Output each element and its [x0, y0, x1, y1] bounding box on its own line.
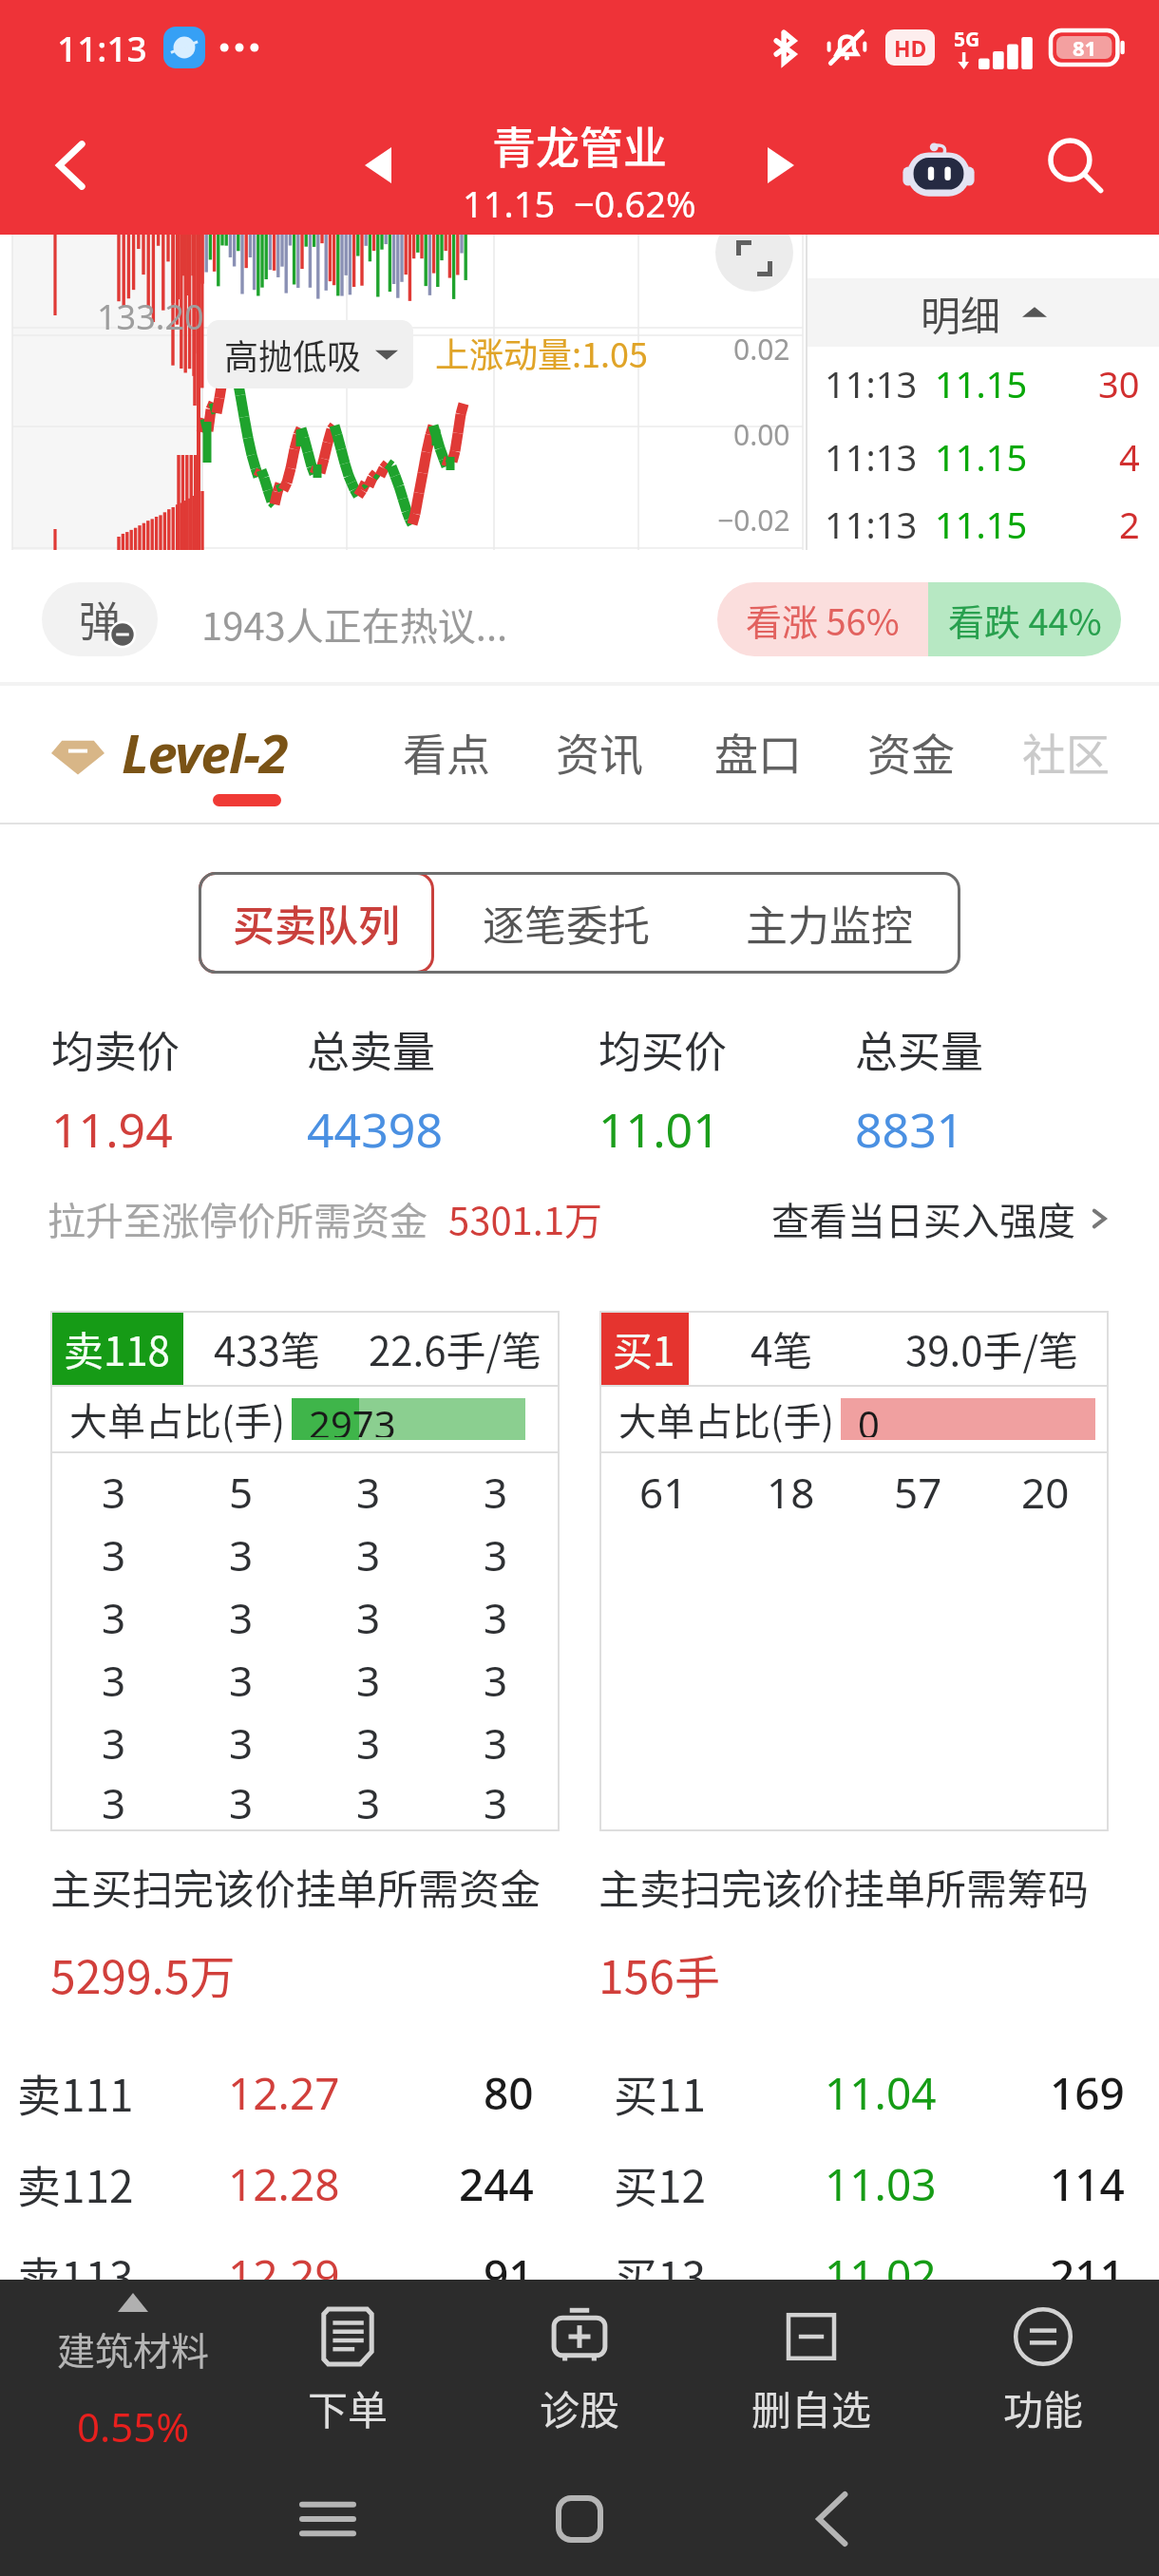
- staticText: −0.02: [717, 501, 790, 540]
- staticText: 20: [1021, 1464, 1070, 1521]
- staticText: HD: [894, 33, 927, 63]
- staticText: 诊股: [540, 2378, 620, 2436]
- staticText: 买11: [614, 2061, 707, 2125]
- staticText: 1943人正在热议...: [201, 597, 508, 652]
- staticText: 5301.1万: [448, 1191, 603, 1246]
- staticText: 44398: [307, 1097, 443, 1162]
- button[interactable]: 下单: [232, 2280, 464, 2462]
- staticText: 22.6手/笔: [369, 1319, 542, 1377]
- staticText: 11.15: [935, 500, 1028, 549]
- staticText: 盘口: [714, 720, 802, 784]
- staticText: 下单: [308, 2378, 389, 2436]
- staticText: 建筑材料: [57, 2321, 209, 2377]
- button[interactable]: Fullscreen chart: [715, 214, 793, 292]
- staticText: 4: [1119, 432, 1140, 482]
- staticText: 3: [102, 1464, 126, 1521]
- staticText: 高抛低吸: [224, 330, 362, 379]
- staticText: 11.02: [825, 2245, 937, 2305]
- staticText: 资讯: [556, 720, 643, 784]
- staticText: 11.04: [825, 2063, 937, 2123]
- staticText: 3: [229, 1774, 254, 1831]
- button[interactable]: 查看当日买入强度: [771, 1191, 1111, 1246]
- staticText: 5299.5万: [50, 1941, 236, 2007]
- button[interactable]: Previous stock: [337, 124, 419, 206]
- staticText: 12.29: [228, 2245, 340, 2305]
- staticText: 5G: [954, 26, 980, 53]
- button[interactable]: Next stock: [740, 124, 822, 206]
- staticText: 均买价: [598, 1018, 728, 1080]
- staticText: 91: [484, 2245, 534, 2305]
- button[interactable]: 盘口: [695, 709, 821, 795]
- button[interactable]: Search: [1032, 122, 1119, 209]
- staticText: 卖113: [17, 2244, 134, 2307]
- staticText: 3: [484, 1774, 508, 1831]
- button[interactable]: 功能: [927, 2280, 1159, 2462]
- button[interactable]: 建筑材料: [17, 2280, 249, 2462]
- button[interactable]: 明细: [807, 278, 1159, 347]
- staticText: 133.20: [97, 294, 204, 340]
- staticText: 2973: [309, 1398, 396, 1437]
- button[interactable]: Recent apps: [252, 2462, 404, 2576]
- staticText: 删自选: [751, 2378, 872, 2436]
- staticText: 244: [459, 2154, 534, 2214]
- button[interactable]: 高抛低吸: [207, 320, 413, 388]
- staticText: 3: [229, 1589, 254, 1646]
- button[interactable]: Home: [503, 2462, 655, 2576]
- staticText: 逐笔委托: [483, 893, 650, 954]
- staticText: 大单占比(手): [618, 1392, 835, 1447]
- staticText: 卖111: [17, 2061, 134, 2125]
- staticText: 拉升至涨停价所需资金: [47, 1191, 427, 1246]
- staticText: 114: [1050, 2154, 1125, 2214]
- button[interactable]: 买1: [599, 1311, 1109, 1831]
- button[interactable]: 卖113: [0, 2229, 1159, 2320]
- button[interactable]: 逐笔委托: [434, 872, 697, 974]
- staticText: 青龙管业: [492, 113, 667, 177]
- staticText: 4笔: [750, 1319, 813, 1377]
- staticText: 0.55%: [77, 2399, 190, 2453]
- button[interactable]: 资讯: [537, 709, 662, 795]
- staticText: 总买量: [855, 1018, 984, 1080]
- button[interactable]: 删自选: [695, 2280, 927, 2462]
- staticText: 11:13: [57, 24, 147, 71]
- staticText: 卖112: [17, 2152, 134, 2216]
- button[interactable]: 买卖队列: [199, 872, 434, 974]
- staticText: Level-2: [122, 716, 288, 788]
- staticText: 主买扫完该价挂单所需资金: [50, 1857, 541, 1916]
- staticText: 3: [356, 1526, 381, 1583]
- button[interactable]: 主力监控: [697, 872, 960, 974]
- staticText: 57: [894, 1464, 942, 1521]
- staticText: 3: [229, 1526, 254, 1583]
- staticText: 433笔: [214, 1319, 320, 1377]
- staticText: 看涨 56%: [746, 594, 900, 646]
- button[interactable]: 卖118: [50, 1311, 560, 1831]
- button[interactable]: AI assistant: [895, 122, 982, 209]
- button[interactable]: 社区: [1003, 709, 1129, 795]
- button[interactable]: 卖112: [0, 2138, 1159, 2229]
- button[interactable]: 看涨 56%: [717, 582, 1121, 656]
- button[interactable]: 卖111: [0, 2047, 1159, 2138]
- staticText: 买12: [614, 2152, 707, 2216]
- staticText: 3: [102, 1652, 126, 1709]
- staticText: 上涨动量:1.05: [435, 328, 648, 377]
- button[interactable]: 弹: [42, 582, 158, 656]
- button[interactable]: 青龙管业: [463, 113, 696, 228]
- button[interactable]: 诊股: [464, 2280, 695, 2462]
- button[interactable]: Back: [755, 2462, 907, 2576]
- staticText: 12.28: [228, 2154, 340, 2214]
- staticText: 8831: [855, 1097, 964, 1162]
- staticText: 3: [356, 1464, 381, 1521]
- staticText: 弹: [79, 589, 121, 650]
- staticText: 169: [1050, 2063, 1125, 2123]
- staticText: 卖118: [64, 1319, 170, 1377]
- staticText: 大单占比(手): [69, 1392, 286, 1447]
- staticText: 主卖扫完该价挂单所需筹码: [598, 1857, 1089, 1916]
- staticText: 3: [484, 1526, 508, 1583]
- staticText: 12.27: [228, 2063, 340, 2123]
- button[interactable]: Level-2: [51, 716, 288, 788]
- staticText: 资金: [867, 720, 955, 784]
- button[interactable]: 看点: [384, 709, 509, 795]
- staticText: 61: [639, 1464, 688, 1521]
- staticText: 3: [356, 1714, 381, 1771]
- button[interactable]: 资金: [848, 709, 974, 795]
- button[interactable]: Back: [0, 95, 142, 235]
